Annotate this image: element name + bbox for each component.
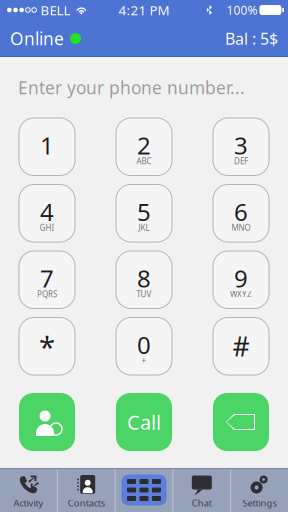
staticText: 100% — [226, 2, 257, 18]
button[interactable]: 5 — [116, 184, 172, 242]
button[interactable]: Chat — [173, 468, 230, 512]
staticText: ABC — [136, 156, 151, 166]
button[interactable]: Activity — [0, 468, 57, 512]
button[interactable]: 6 — [213, 184, 269, 242]
button[interactable]: 7 — [19, 251, 75, 308]
staticText: 4:21 PM — [118, 1, 169, 19]
staticText: Bal : 5$ — [225, 28, 278, 49]
staticText: PQRS — [37, 289, 57, 299]
staticText: 4 — [40, 196, 54, 228]
staticText: 0 — [137, 329, 151, 361]
staticText: GHI — [39, 222, 54, 233]
button[interactable]: 0 — [116, 317, 172, 375]
button[interactable]: 9 — [213, 251, 269, 308]
staticText: MNO — [231, 222, 250, 233]
staticText: 6 — [234, 196, 248, 228]
staticText: JKL — [138, 222, 149, 233]
staticText: Contacts — [68, 497, 105, 509]
button[interactable]: * — [19, 317, 75, 375]
button[interactable]: 3 — [213, 118, 269, 175]
staticText: Settings — [243, 497, 277, 509]
button[interactable]: Settings — [231, 468, 288, 512]
staticText: BELL — [40, 1, 70, 19]
staticText: 2 — [137, 129, 151, 161]
button[interactable]: Bal : 5$ — [215, 20, 288, 57]
staticText: * — [39, 327, 55, 366]
staticText: WXYZ — [230, 289, 252, 299]
staticText: 7 — [40, 262, 54, 294]
button[interactable]: Call — [116, 393, 172, 451]
staticText: DEF — [234, 156, 248, 166]
staticText: 3 — [234, 129, 248, 161]
staticText: 1 — [40, 129, 54, 161]
staticText: 9 — [234, 262, 248, 294]
button[interactable]: Contacts — [58, 468, 115, 512]
staticText: 5 — [137, 196, 151, 228]
staticText: TUV — [136, 289, 151, 299]
button[interactable]: 2 — [116, 118, 172, 175]
button[interactable]: Online — [0, 20, 91, 57]
staticText: Enter your phone number... — [18, 76, 245, 99]
staticText: Chat — [192, 497, 212, 509]
staticText: Activity — [13, 497, 43, 509]
button[interactable]: Add contact — [19, 393, 75, 451]
staticText: Online — [10, 27, 64, 50]
button[interactable]: 1 — [19, 118, 75, 175]
button[interactable]: Keypad — [116, 468, 172, 512]
staticText: + — [141, 355, 146, 366]
button[interactable]: Delete — [213, 393, 269, 451]
button[interactable]: 4 — [19, 184, 75, 242]
staticText: 8 — [137, 262, 151, 294]
button[interactable]: # — [213, 317, 269, 375]
button[interactable]: 8 — [116, 251, 172, 308]
staticText: Call — [127, 409, 161, 435]
staticText: # — [232, 328, 249, 364]
